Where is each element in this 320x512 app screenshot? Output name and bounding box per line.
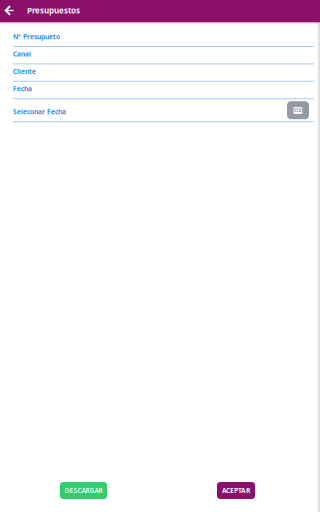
button[interactable]: Atrás (0, 0, 18, 22)
button[interactable]: ACEPTAR (217, 482, 255, 499)
staticText: ACEPTAR (222, 486, 250, 495)
button[interactable]: Fecha (13, 82, 314, 99)
staticText: Fecha (13, 84, 32, 93)
button[interactable]: Nº Presupueto (13, 30, 314, 47)
button[interactable]: DESCARGAR (60, 482, 107, 499)
button[interactable]: Seleconar Fecha (13, 99, 66, 121)
button[interactable]: Canal (13, 47, 314, 64)
staticText: Canal (13, 49, 31, 58)
staticText: Seleconar Fecha (13, 107, 66, 116)
button[interactable]: Seleccionar fecha (287, 101, 309, 119)
staticText: Nº Presupueto (13, 32, 60, 41)
button[interactable]: Cliente (13, 64, 314, 82)
staticText: DESCARGAR (64, 486, 102, 495)
staticText: Cliente (13, 67, 36, 76)
staticText: Presupuestos (27, 5, 80, 16)
